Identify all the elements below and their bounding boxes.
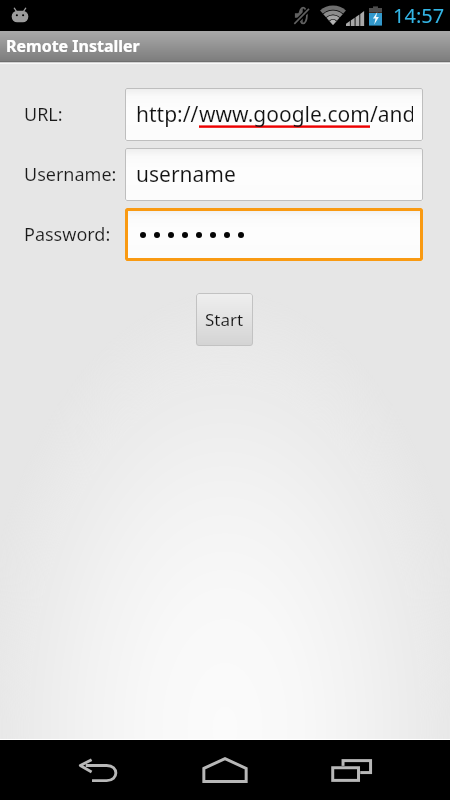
staticText: username: [136, 160, 236, 189]
button[interactable]: Back: [53, 740, 147, 800]
staticText: http://: [136, 100, 199, 129]
staticText: Start: [205, 308, 244, 331]
button[interactable]: Recent apps: [305, 740, 399, 800]
staticText: Password:: [24, 222, 111, 247]
staticText: /android: [370, 100, 413, 129]
staticText: URL:: [24, 102, 63, 127]
button[interactable]: Start: [196, 293, 253, 346]
staticText: Remote Installer: [6, 35, 140, 57]
staticText: Username:: [24, 162, 117, 187]
button[interactable]: Home: [178, 740, 272, 800]
staticText: 14:57: [393, 2, 445, 29]
button[interactable]: [125, 208, 423, 261]
button[interactable]: http://: [125, 88, 423, 141]
button[interactable]: username: [125, 148, 423, 201]
staticText: www.google.com: [199, 100, 370, 129]
